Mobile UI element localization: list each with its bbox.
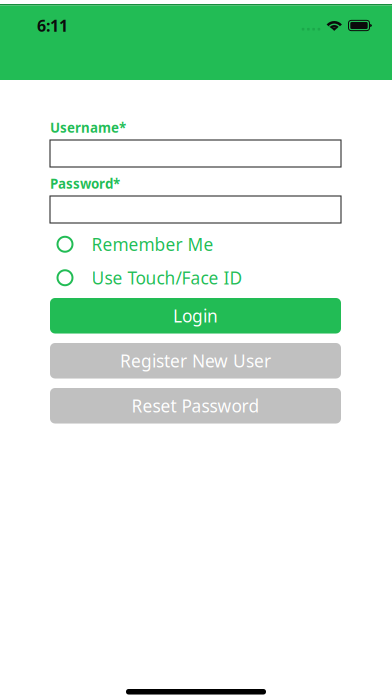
staticText: Username*	[50, 119, 126, 136]
button[interactable]: Use Touch/Face ID	[50, 269, 341, 286]
staticText: Remember Me	[91, 233, 213, 256]
staticText: Reset Password	[131, 394, 259, 417]
button[interactable]: Remember Me	[50, 236, 341, 252]
button[interactable]: Register New User	[50, 343, 341, 378]
staticText: Use Touch/Face ID	[91, 266, 242, 289]
button[interactable]: Password	[50, 196, 341, 223]
button[interactable]: Username	[50, 140, 341, 167]
staticText: 6:11	[37, 15, 68, 36]
button[interactable]: Reset Password	[50, 388, 341, 423]
staticText: Login	[173, 304, 218, 327]
staticText: Register New User	[120, 349, 271, 372]
button[interactable]: Login	[50, 298, 341, 333]
staticText: Password*	[50, 175, 120, 192]
